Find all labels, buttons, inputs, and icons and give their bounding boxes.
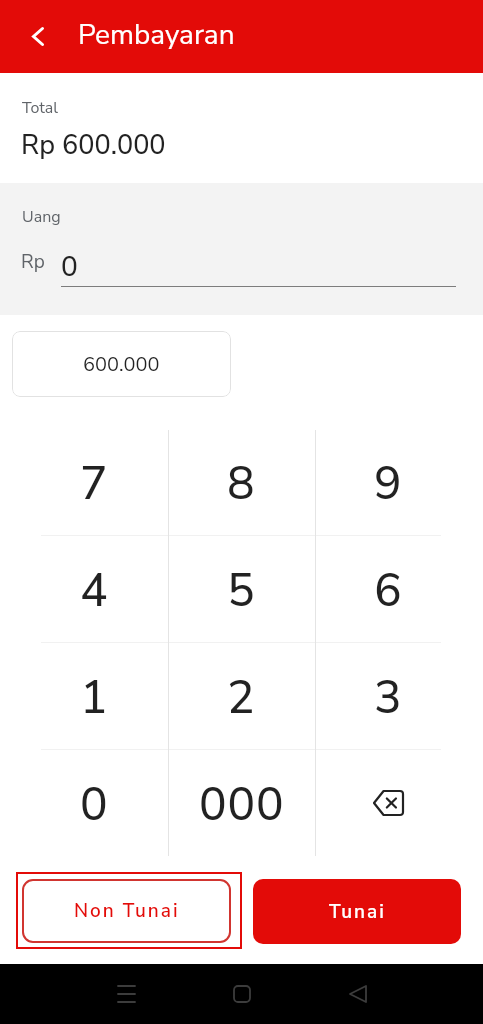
button[interactable]: Backspace: [315, 749, 462, 856]
button[interactable]: 4: [21, 535, 168, 642]
button[interactable]: Recent apps: [102, 970, 150, 1018]
staticText: 1: [80, 666, 109, 729]
staticText: 600.000: [83, 351, 160, 378]
button[interactable]: Tunai: [253, 879, 461, 944]
staticText: 5: [227, 559, 256, 622]
button[interactable]: Home: [218, 970, 266, 1018]
button[interactable]: 5: [168, 535, 315, 642]
button[interactable]: 2: [168, 642, 315, 749]
staticText: Tunai: [329, 899, 386, 925]
button[interactable]: Back: [334, 970, 382, 1018]
button[interactable]: 8: [168, 428, 315, 535]
button[interactable]: Back: [14, 13, 61, 60]
staticText: 3: [374, 666, 403, 729]
button[interactable]: 0: [21, 749, 168, 856]
staticText: 2: [227, 666, 256, 729]
staticText: 8: [227, 452, 256, 515]
staticText: Uang: [22, 206, 61, 228]
button[interactable]: Non Tunai: [16, 872, 242, 949]
button[interactable]: 000: [168, 749, 315, 856]
staticText: Pembayaran: [78, 16, 235, 54]
button[interactable]: 6: [315, 535, 462, 642]
staticText: 9: [374, 452, 403, 515]
staticText: 7: [80, 452, 109, 515]
staticText: Rp: [21, 249, 45, 275]
staticText: 4: [80, 559, 109, 622]
staticText: Rp 600.000: [21, 127, 166, 164]
button[interactable]: 7: [21, 428, 168, 535]
button[interactable]: 3: [315, 642, 462, 749]
staticText: 0: [61, 248, 78, 286]
button[interactable]: 1: [21, 642, 168, 749]
button[interactable]: 9: [315, 428, 462, 535]
staticText: Non Tunai: [74, 898, 180, 924]
staticText: 6: [374, 559, 403, 622]
staticText: 000: [199, 773, 285, 836]
button[interactable]: 600.000: [12, 331, 231, 397]
staticText: 0: [80, 773, 109, 836]
staticText: Total: [22, 97, 59, 119]
